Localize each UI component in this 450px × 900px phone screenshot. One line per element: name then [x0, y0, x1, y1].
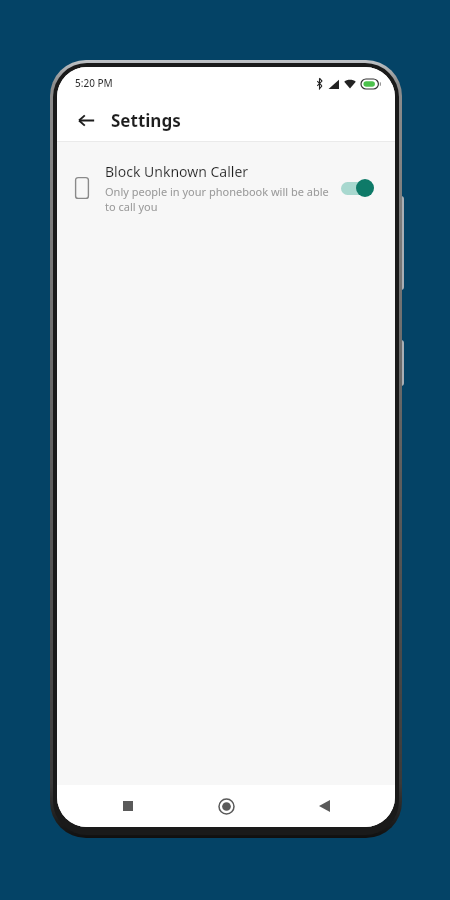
button[interactable]: Block Unknown Caller	[57, 154, 395, 222]
staticText: Block Unknown Caller	[105, 162, 249, 181]
staticText: Settings	[111, 109, 181, 132]
button[interactable]: Back	[307, 789, 341, 823]
staticText: 5:20 PM	[75, 76, 113, 90]
button[interactable]: Recent apps	[111, 789, 145, 823]
button[interactable]: Back	[69, 103, 103, 137]
staticText: Only people in your phonebook will be ab…	[105, 184, 329, 214]
button[interactable]: Home	[209, 789, 243, 823]
button[interactable]: Block unknown caller toggle	[339, 176, 379, 200]
